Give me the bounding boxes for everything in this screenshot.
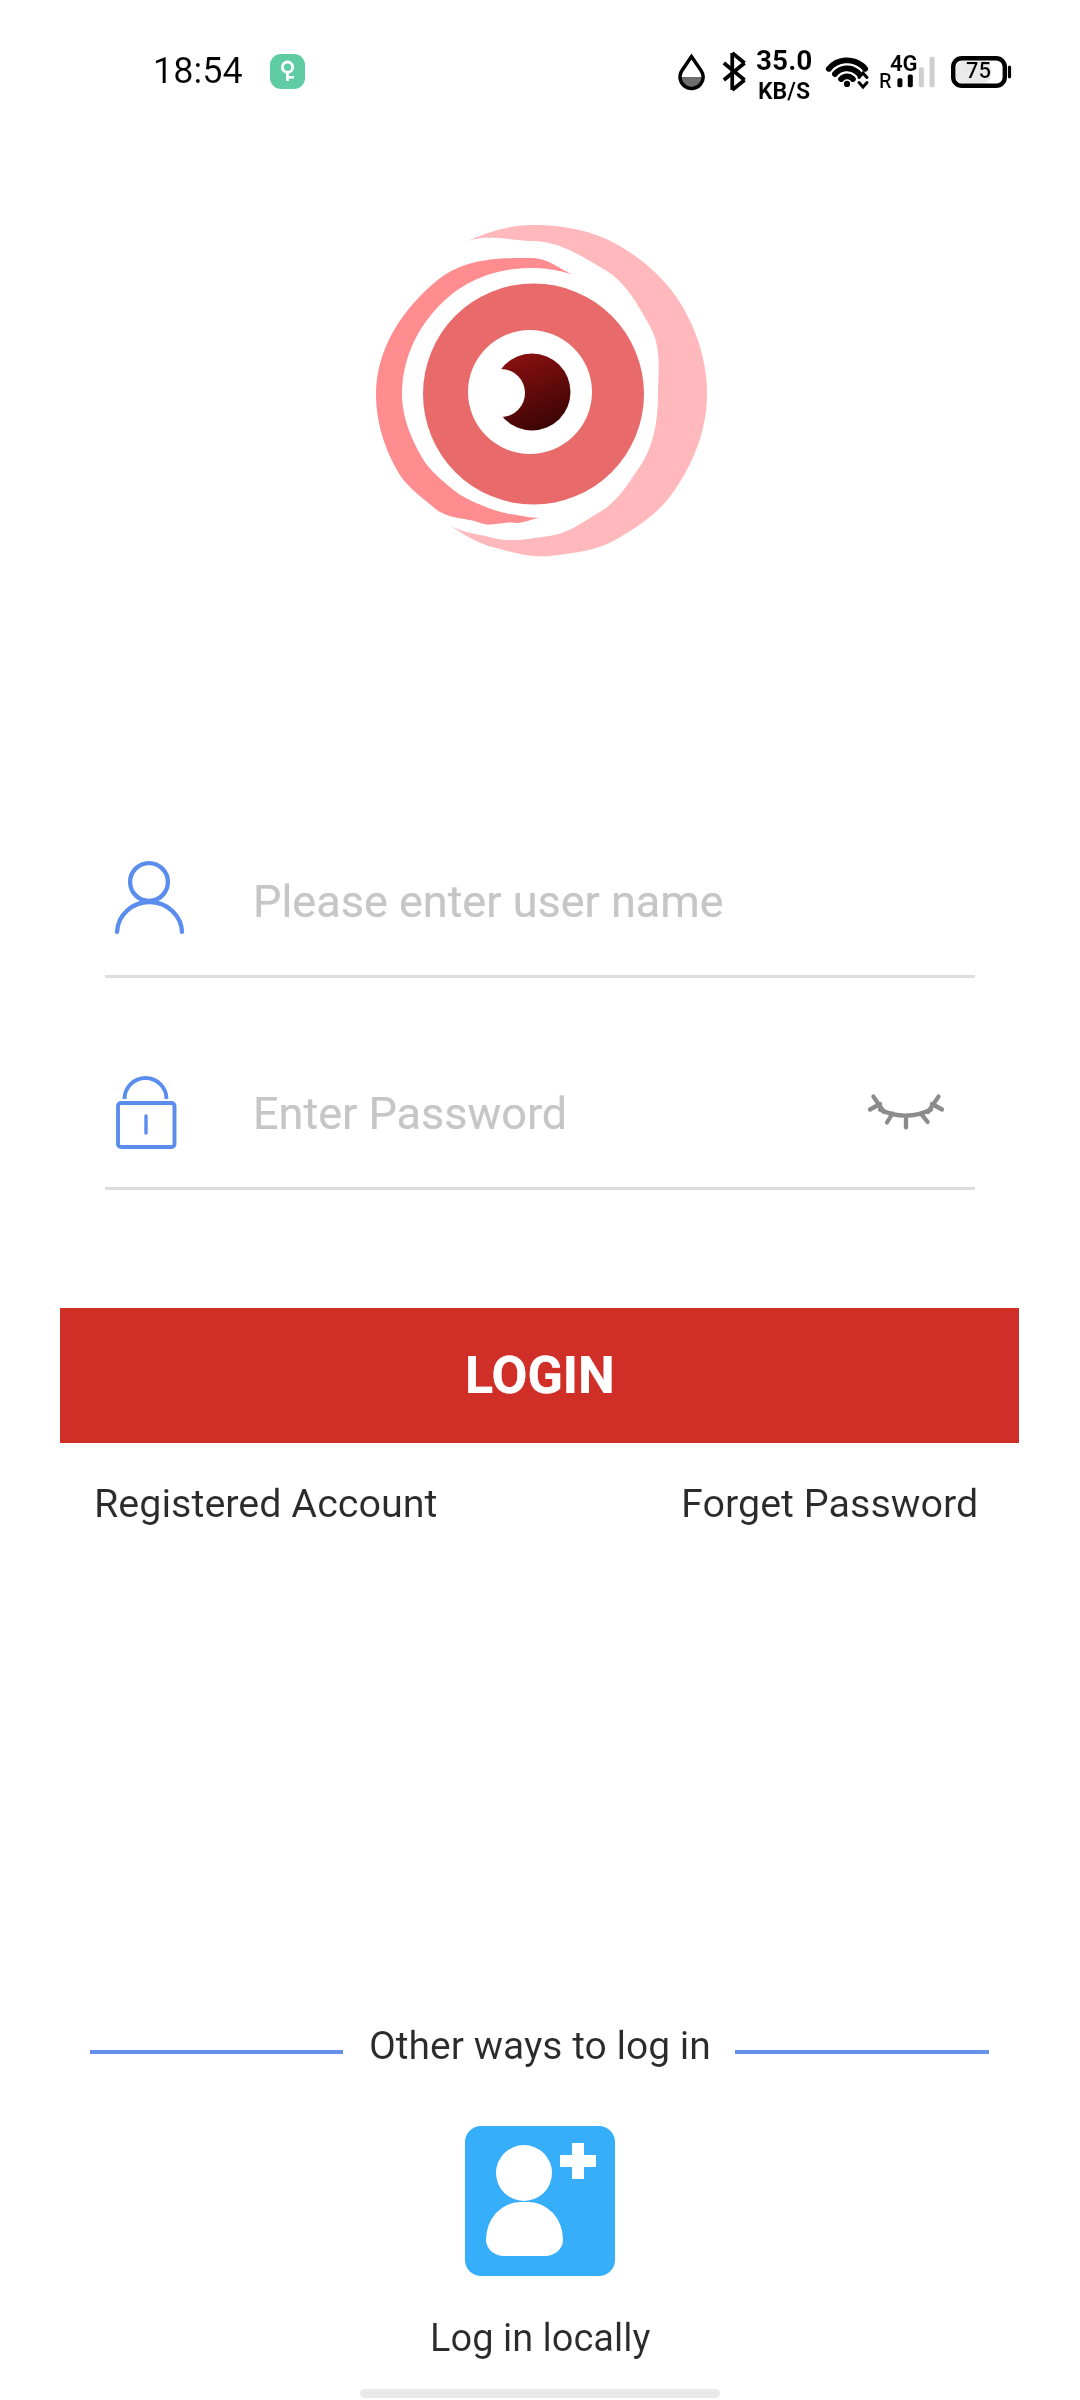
button[interactable]: Enter Password bbox=[105, 1051, 835, 1175]
staticText: Please enter user name bbox=[253, 875, 724, 928]
other: Log in locally bbox=[465, 2126, 615, 2276]
other: User name bbox=[112, 858, 188, 940]
staticText: 4G bbox=[890, 51, 918, 77]
button[interactable]: LOGIN bbox=[60, 1308, 1019, 1443]
staticText: 35.0 bbox=[756, 44, 813, 77]
staticText: Log in locally bbox=[430, 2316, 651, 2361]
staticText: Registered Account bbox=[94, 1480, 438, 1526]
button[interactable]: Forget Password bbox=[681, 1462, 979, 1544]
staticText: Other ways to log in bbox=[369, 2023, 711, 2069]
button[interactable]: Log in locally bbox=[340, 2126, 740, 2361]
button[interactable]: Show password bbox=[846, 1048, 968, 1158]
button[interactable]: Registered Account bbox=[94, 1462, 438, 1544]
staticText: R bbox=[879, 69, 892, 92]
staticText: Enter Password bbox=[253, 1087, 568, 1140]
staticText: LOGIN bbox=[465, 1345, 615, 1406]
staticText: KB/S bbox=[758, 78, 811, 105]
other: Password bbox=[115, 1070, 179, 1150]
staticText: 18:54 bbox=[153, 50, 243, 92]
staticText: Forget Password bbox=[681, 1480, 979, 1526]
button[interactable]: Please enter user name bbox=[105, 839, 975, 963]
staticText: 75 bbox=[966, 58, 992, 84]
